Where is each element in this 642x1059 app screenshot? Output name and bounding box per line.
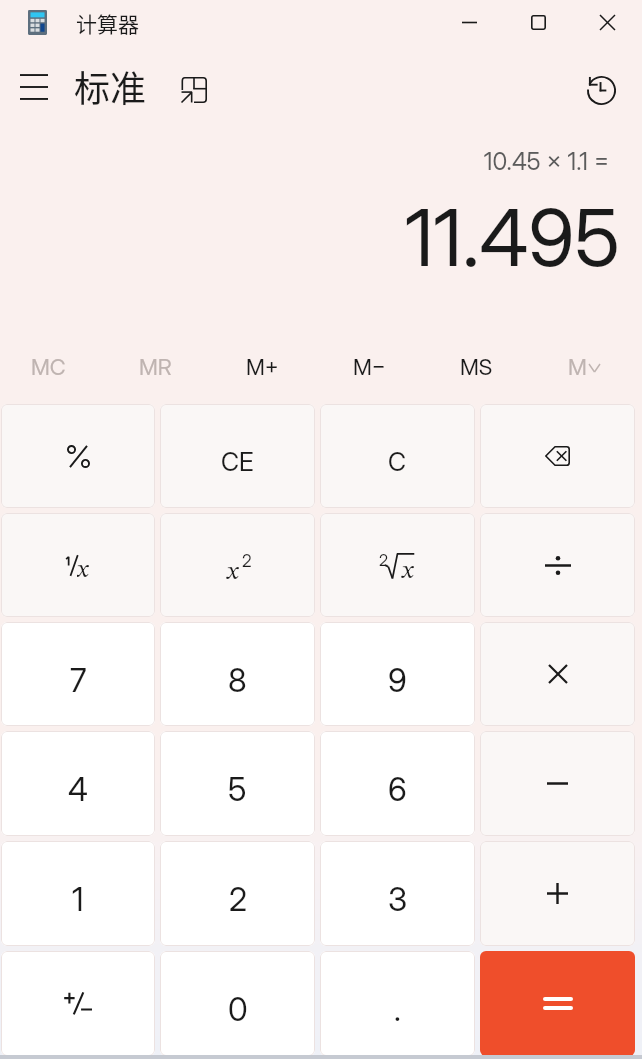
button[interactable]: 2 <box>160 841 315 946</box>
button[interactable]: 1 <box>1 841 155 946</box>
staticText: x <box>227 560 239 585</box>
staticText: 11.495 <box>404 189 620 285</box>
button[interactable]: MS <box>423 335 530 399</box>
staticText: 2 <box>379 550 388 569</box>
button[interactable]: 0 <box>160 951 315 1056</box>
staticText: 9 <box>388 661 407 700</box>
staticText: x <box>402 559 414 584</box>
staticText: 4 <box>68 770 88 809</box>
button[interactable]: Percent <box>1 404 155 508</box>
staticText: M+ <box>246 354 279 381</box>
staticText: MS <box>460 354 493 381</box>
button[interactable]: Reciprocal <box>1 513 155 617</box>
button[interactable]: Equals <box>480 951 635 1056</box>
button[interactable]: Maximize <box>504 0 573 45</box>
button[interactable]: Multiply <box>480 622 635 726</box>
staticText: MR <box>139 354 172 381</box>
staticText: MC <box>31 354 66 381</box>
button[interactable]: Close <box>573 0 642 45</box>
staticText: 10.45 × 1.1 = <box>483 147 609 176</box>
button[interactable]: Minimize <box>435 0 504 45</box>
staticText: 标准 <box>74 60 147 112</box>
staticText: 计算器 <box>76 8 139 38</box>
button[interactable]: CE <box>160 404 315 508</box>
button[interactable]: 3 <box>320 841 475 946</box>
button[interactable]: Backspace <box>480 404 635 508</box>
button[interactable]: Open navigation <box>6 59 62 115</box>
staticText: M <box>568 354 587 381</box>
staticText: 1 <box>72 880 84 919</box>
staticText: x <box>77 558 89 581</box>
staticText: C <box>388 447 407 477</box>
staticText: 0 <box>228 990 248 1029</box>
staticText: 2 <box>242 551 252 572</box>
button[interactable]: History <box>575 61 627 113</box>
button[interactable]: M− <box>316 335 423 399</box>
staticText: M− <box>353 354 386 381</box>
button[interactable]: Positive negative <box>1 951 155 1056</box>
button[interactable]: 9 <box>320 622 475 726</box>
button[interactable]: Add <box>480 841 635 946</box>
button[interactable]: M+ <box>209 335 316 399</box>
button[interactable]: MC <box>0 335 102 399</box>
button[interactable]: Divide <box>480 513 635 617</box>
staticText: . <box>394 991 401 1029</box>
button[interactable]: C <box>320 404 475 508</box>
staticText: 5 <box>228 770 247 809</box>
button[interactable]: Square root <box>320 513 475 617</box>
button[interactable]: 4 <box>1 731 155 836</box>
staticText: 3 <box>388 880 408 919</box>
button[interactable]: . <box>320 951 475 1056</box>
button[interactable]: Keep on top <box>168 65 212 109</box>
staticText: 2 <box>229 880 247 919</box>
button[interactable]: Memory <box>530 335 637 399</box>
button[interactable]: 8 <box>160 622 315 726</box>
button[interactable]: MR <box>102 335 209 399</box>
button[interactable]: Square <box>160 513 315 617</box>
button[interactable]: Subtract <box>480 731 635 836</box>
button[interactable]: 6 <box>320 731 475 836</box>
button[interactable]: 7 <box>1 622 155 726</box>
staticText: CE <box>221 447 254 477</box>
staticText: 8 <box>228 661 247 700</box>
staticText: 7 <box>70 661 87 700</box>
staticText: 6 <box>388 770 407 809</box>
button[interactable]: 5 <box>160 731 315 836</box>
